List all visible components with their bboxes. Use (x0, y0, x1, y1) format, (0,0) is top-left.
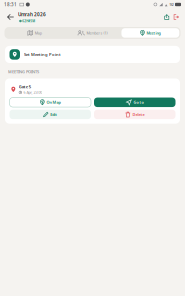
staticText: Delete (132, 112, 144, 117)
staticText: 92 (169, 2, 173, 7)
staticText: Umrah 2026 (18, 11, 46, 18)
button[interactable]: Back (4, 9, 17, 25)
staticText: Go to (133, 100, 143, 105)
button[interactable]: Go to (94, 98, 175, 107)
staticText: 18:31 (4, 1, 17, 8)
button[interactable]: Meeting (121, 28, 179, 38)
staticText: On Map (46, 100, 60, 105)
staticText: Map (35, 30, 42, 35)
button[interactable]: Map (6, 28, 64, 38)
staticText: Members (1) (86, 30, 107, 35)
staticText: 62H45M (22, 19, 35, 23)
button[interactable]: Edit (9, 110, 91, 119)
button[interactable]: Delete (94, 110, 175, 119)
staticText: MEETING POINTS (8, 69, 39, 74)
staticText: 6 Apr, 23:00 (23, 90, 42, 95)
staticText: Set Meeting Point (24, 52, 61, 57)
staticText: Gate 5 (19, 84, 31, 89)
button[interactable]: On Map (9, 98, 91, 107)
staticText: Meeting (147, 30, 161, 35)
button[interactable]: Leave group (171, 9, 181, 25)
button[interactable]: Share (162, 9, 171, 25)
button[interactable]: Members (1) (64, 28, 121, 38)
staticText: Edit (50, 112, 57, 117)
button[interactable]: Set Meeting Point (5, 46, 180, 63)
